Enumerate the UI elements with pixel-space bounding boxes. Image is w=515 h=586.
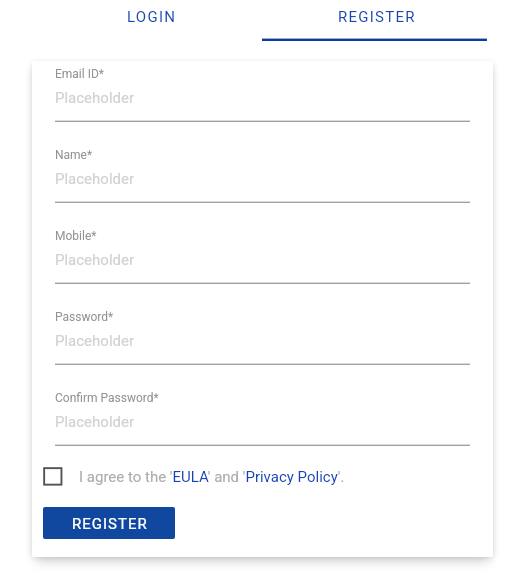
button[interactable]: REGISTER bbox=[43, 507, 175, 539]
staticText: Confirm Password* bbox=[55, 391, 159, 405]
button[interactable]: I agree to the EULA and Privacy Policy bbox=[33, 459, 345, 495]
staticText: Name* bbox=[55, 148, 93, 162]
staticText: REGISTER bbox=[338, 8, 416, 26]
staticText: Email ID* bbox=[55, 67, 104, 81]
staticText: Placeholder bbox=[55, 251, 135, 269]
staticText: I agree to the 'EULA' and 'Privacy Polic… bbox=[79, 468, 345, 486]
other: I agree to the EULA and Privacy Policy bbox=[33, 459, 79, 495]
staticText: REGISTER bbox=[72, 515, 148, 533]
staticText: Placeholder bbox=[55, 170, 135, 188]
staticText: Placeholder bbox=[55, 89, 135, 107]
staticText: Password* bbox=[55, 310, 114, 324]
button[interactable]: REGISTER bbox=[262, 0, 487, 41]
staticText: Mobile* bbox=[55, 229, 97, 243]
button[interactable]: LOGIN bbox=[37, 0, 262, 41]
staticText: Placeholder bbox=[55, 413, 135, 431]
staticText: LOGIN bbox=[127, 8, 177, 26]
staticText: Placeholder bbox=[55, 332, 135, 350]
